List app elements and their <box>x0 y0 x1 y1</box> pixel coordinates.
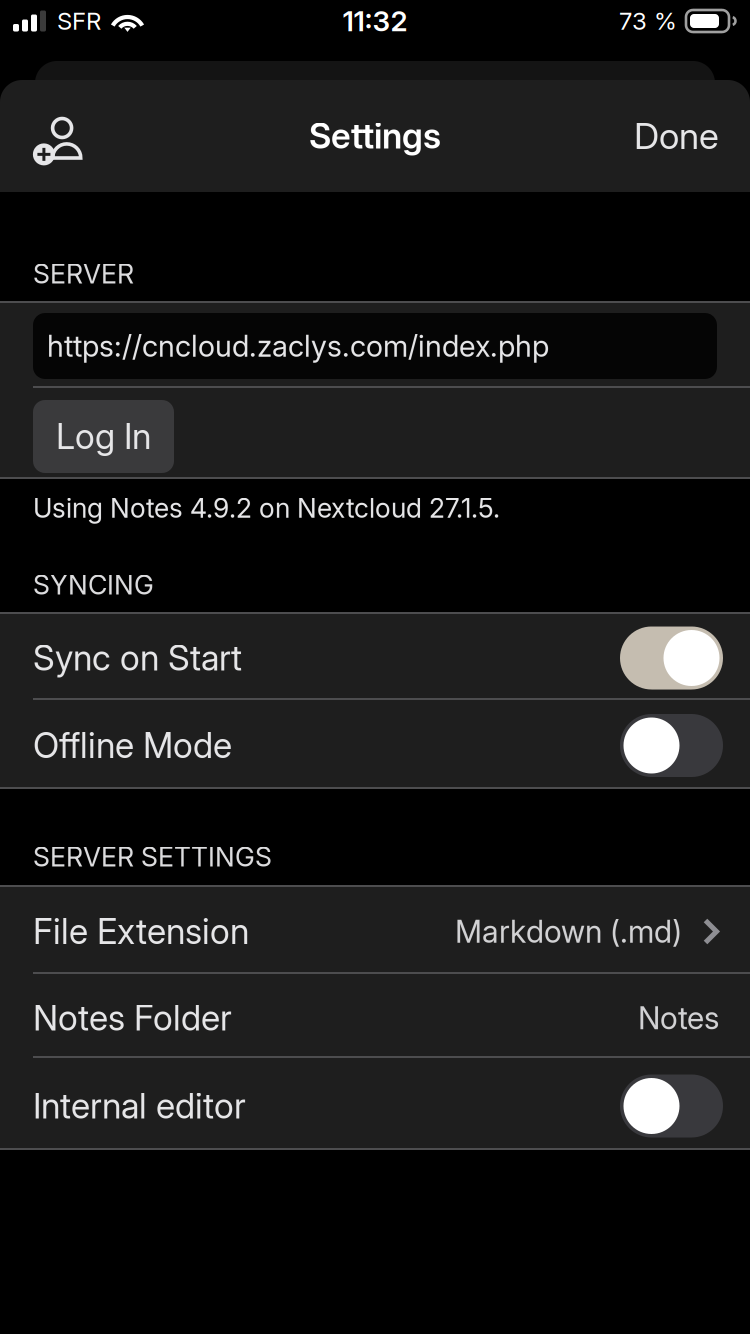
staticText: Markdown (.md) <box>455 913 682 950</box>
button[interactable]: File Extension <box>0 887 750 972</box>
staticText: SFR <box>57 6 101 35</box>
staticText: Internal editor <box>33 1085 246 1127</box>
staticText: Log In <box>56 415 151 457</box>
staticText: Done <box>634 114 719 158</box>
staticText: 11:32 <box>342 4 407 38</box>
staticText: Notes <box>638 999 719 1036</box>
staticText: Notes Folder <box>33 997 232 1039</box>
staticText: 73 % <box>619 6 677 35</box>
staticText: SYNCING <box>33 569 154 601</box>
staticText: Sync on Start <box>33 637 242 679</box>
button[interactable]: Log In <box>33 400 174 473</box>
button[interactable]: Done <box>608 80 750 192</box>
staticText: Settings <box>309 115 441 157</box>
staticText: File Extension <box>33 910 249 952</box>
staticText: SERVER <box>33 258 134 290</box>
staticText: Using Notes 4.9.2 on Nextcloud 27.1.5. <box>33 492 500 524</box>
staticText: SERVER SETTINGS <box>33 841 272 873</box>
staticText: Offline Mode <box>33 724 232 766</box>
staticText: https://cncloud.zaclys.com/index.php <box>47 328 549 364</box>
button[interactable]: Add account <box>0 80 112 192</box>
